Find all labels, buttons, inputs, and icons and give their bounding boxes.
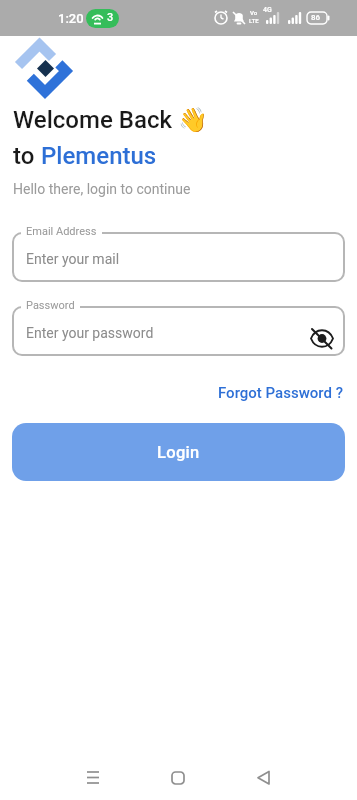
staticText: 1:20	[58, 11, 84, 26]
staticText: Password	[26, 299, 75, 312]
staticText: LTE	[249, 17, 259, 24]
staticText: Plementus	[41, 142, 157, 170]
staticText: Hello there, login to continue	[13, 181, 191, 197]
staticText: Welcome Back 👋	[13, 106, 208, 134]
button[interactable]	[248, 764, 276, 792]
staticText: Vo	[250, 9, 258, 16]
button[interactable]: Enter your mail	[12, 232, 345, 282]
staticText: 86	[311, 13, 321, 22]
button[interactable]: Login	[12, 423, 345, 481]
staticText: Enter your mail	[26, 251, 120, 267]
button[interactable]	[80, 764, 108, 792]
staticText: Email Address	[26, 225, 97, 238]
button[interactable]: Enter your password	[12, 306, 345, 356]
staticText: 3	[107, 11, 114, 24]
button[interactable]	[164, 764, 192, 792]
staticText: Login	[157, 443, 200, 462]
staticText: to	[13, 142, 41, 170]
staticText: Enter your password	[26, 325, 154, 341]
button[interactable]	[307, 316, 337, 346]
button[interactable]: Forgot Password ?	[218, 384, 344, 402]
staticText: 4G	[263, 6, 272, 14]
